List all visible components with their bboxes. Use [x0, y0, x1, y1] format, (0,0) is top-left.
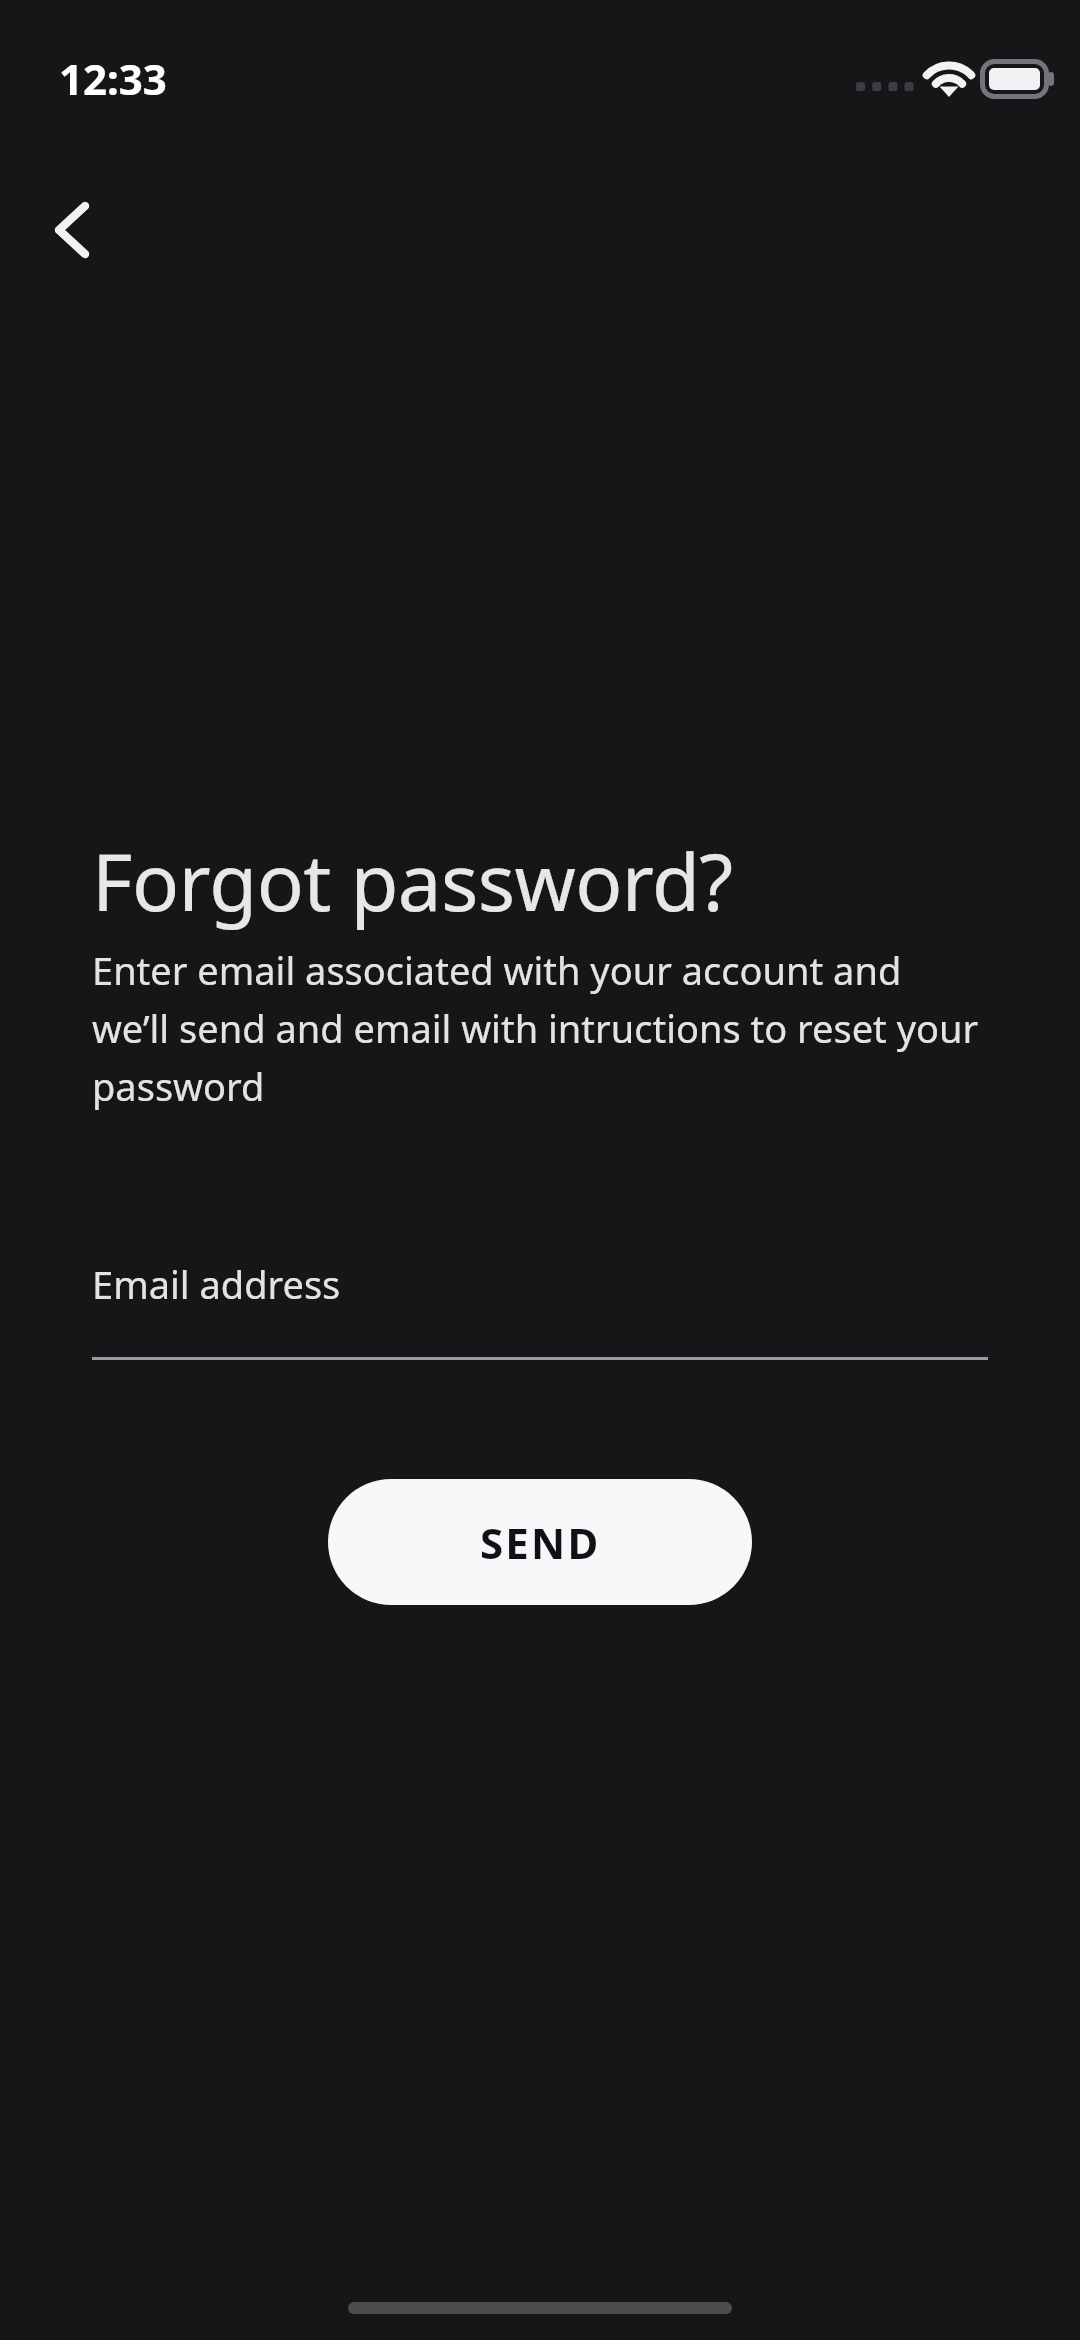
staticText: SEND [480, 1514, 601, 1571]
button[interactable]: Email address [92, 1258, 988, 1360]
staticText: Email address [92, 1258, 341, 1310]
staticText: Enter email associated with your account… [92, 944, 988, 1112]
staticText: Forgot password? [92, 828, 733, 934]
button[interactable]: Back [24, 182, 120, 278]
button[interactable]: SEND [328, 1479, 752, 1605]
staticText: 12:33 [59, 50, 167, 107]
